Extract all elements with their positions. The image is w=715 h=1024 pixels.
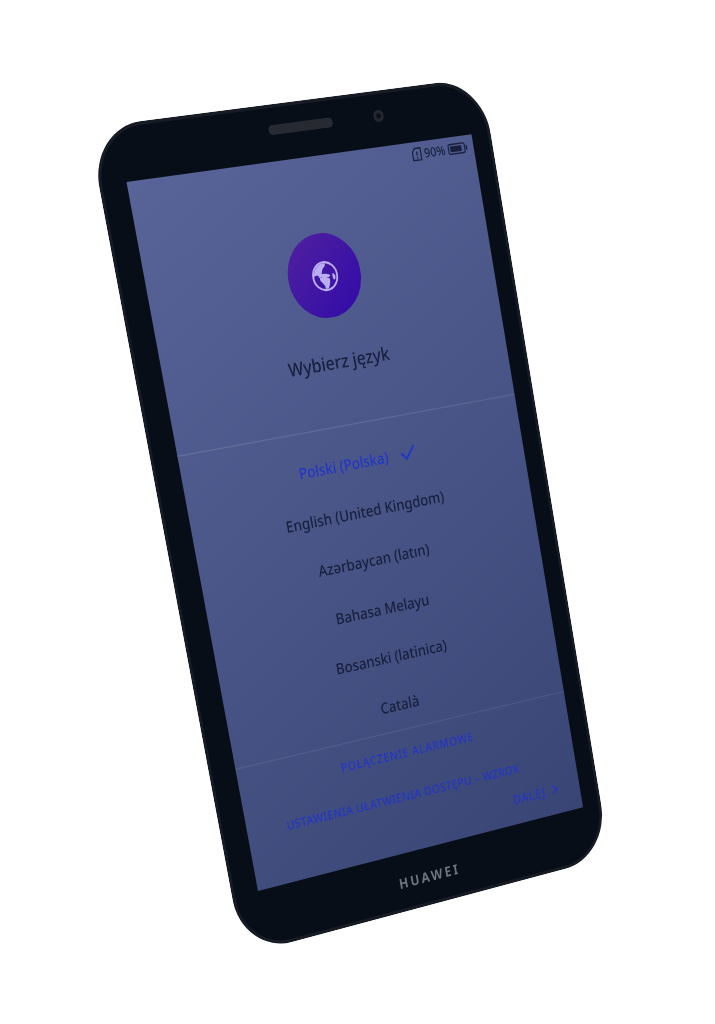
staticText: Català xyxy=(159,493,202,512)
staticText: English (United Kingdom) xyxy=(95,312,265,331)
staticText: Bosanski (latinica) xyxy=(120,448,241,467)
staticText: POŁĄCZENIE ALARMOWE xyxy=(107,540,253,555)
button[interactable]: Bahasa Melayu xyxy=(0,391,360,433)
staticText: USTAWIENIA UŁATWIENIA DOSTĘPU – WZROK xyxy=(41,580,297,595)
button[interactable]: Azərbaycan (latın) xyxy=(0,345,360,387)
staticText: Bahasa Melayu xyxy=(129,403,231,422)
button[interactable]: English (United Kingdom) xyxy=(0,300,360,342)
button[interactable]: USTAWIENIA UŁATWIENIA DOSTĘPU – WZROK xyxy=(41,575,297,599)
staticText: Polski (Polska) xyxy=(118,267,214,286)
button[interactable]: Polski (Polska) xyxy=(0,255,360,297)
staticText: Wybierz język xyxy=(126,172,234,194)
button[interactable]: Català xyxy=(0,481,360,523)
button[interactable]: POŁĄCZENIE ALARMOWE xyxy=(0,533,360,561)
staticText: Azərbaycan (latın) xyxy=(120,357,240,376)
button[interactable]: Bosanski (latinica) xyxy=(0,436,360,478)
staticText: HUAWEI xyxy=(146,658,214,676)
